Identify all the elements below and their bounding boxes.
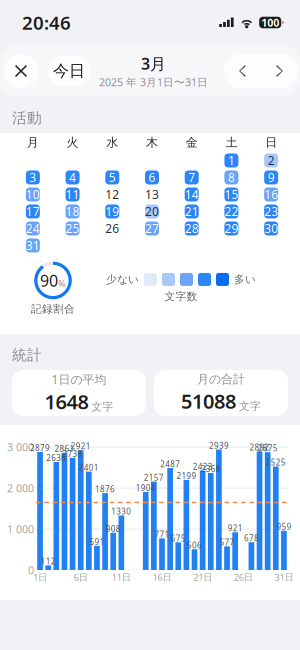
staticText: 1 000 bbox=[7, 522, 34, 536]
staticText: 6 bbox=[148, 169, 155, 185]
staticText: 12 bbox=[105, 186, 119, 202]
staticText: 2939 bbox=[209, 440, 229, 451]
staticText: 30 bbox=[264, 220, 278, 236]
staticText: 2 bbox=[268, 152, 275, 168]
staticText: 2892 bbox=[249, 442, 269, 453]
staticText: 1904 bbox=[136, 483, 156, 493]
staticText: 21 bbox=[185, 203, 199, 219]
staticText: 24 bbox=[26, 220, 40, 236]
staticText: 11日 bbox=[112, 571, 131, 583]
staticText: 26 bbox=[105, 220, 119, 236]
staticText: 8 bbox=[228, 169, 235, 185]
staticText: 1日 bbox=[33, 571, 47, 583]
staticText: 10 bbox=[26, 186, 40, 202]
button[interactable]: 閉じる bbox=[4, 54, 38, 88]
staticText: 26日 bbox=[234, 571, 253, 583]
staticText: 今日 bbox=[53, 61, 85, 81]
staticText: 16日 bbox=[152, 571, 171, 583]
staticText: 文字数 bbox=[164, 290, 197, 303]
staticText: 908 bbox=[106, 523, 121, 534]
staticText: 3 bbox=[29, 169, 36, 185]
staticText: 27 bbox=[145, 220, 159, 236]
staticText: 木 bbox=[146, 135, 158, 150]
staticText: 5 bbox=[109, 169, 116, 185]
staticText: 1 bbox=[228, 152, 235, 168]
staticText: 金 bbox=[186, 135, 198, 150]
staticText: 4 bbox=[69, 169, 76, 185]
staticText: 3月 bbox=[141, 53, 166, 74]
staticText: 7 bbox=[188, 169, 195, 185]
staticText: 20 bbox=[145, 203, 159, 219]
staticText: 2738 bbox=[63, 448, 83, 459]
staticText: 土 bbox=[225, 135, 237, 150]
staticText: 29 bbox=[224, 220, 238, 236]
staticText: 18 bbox=[66, 203, 80, 219]
staticText: 771 bbox=[154, 529, 169, 540]
staticText: 15 bbox=[224, 186, 238, 202]
staticText: 2879 bbox=[30, 443, 50, 453]
staticText: 6日 bbox=[74, 571, 88, 583]
staticText: 水 bbox=[106, 135, 118, 150]
staticText: 17 bbox=[26, 203, 40, 219]
staticText: 28 bbox=[185, 220, 199, 236]
staticText: 1876 bbox=[95, 484, 115, 494]
staticText: 90 bbox=[40, 270, 58, 291]
staticText: 多い bbox=[234, 273, 256, 286]
button[interactable]: 今日 bbox=[47, 56, 91, 86]
staticText: 959 bbox=[276, 521, 291, 532]
staticText: 2487 bbox=[160, 459, 180, 469]
staticText: 2921 bbox=[71, 441, 91, 452]
staticText: 675 bbox=[171, 533, 186, 544]
button[interactable]: 1日の平均 bbox=[12, 370, 146, 416]
staticText: 文字 bbox=[91, 400, 113, 413]
staticText: 591 bbox=[89, 536, 104, 547]
staticText: 2875 bbox=[258, 443, 278, 453]
staticText: 記録割合 bbox=[31, 302, 75, 316]
staticText: 9 bbox=[268, 169, 275, 185]
staticText: 1648 bbox=[44, 388, 88, 415]
staticText: 112 bbox=[41, 556, 56, 567]
staticText: 2636 bbox=[46, 453, 66, 463]
staticText: 13 bbox=[145, 186, 159, 202]
staticText: 16 bbox=[264, 186, 278, 202]
staticText: 678 bbox=[244, 533, 259, 543]
staticText: % bbox=[58, 277, 66, 290]
staticText: 22 bbox=[224, 203, 238, 219]
staticText: 日 bbox=[265, 135, 277, 150]
staticText: 31 bbox=[26, 237, 40, 253]
staticText: 20:46 bbox=[22, 10, 71, 35]
staticText: 19 bbox=[105, 203, 119, 219]
staticText: 2368 bbox=[201, 464, 221, 474]
staticText: 100 bbox=[261, 15, 279, 30]
staticText: 31日 bbox=[274, 571, 293, 583]
button[interactable]: 前の月 bbox=[224, 54, 261, 88]
staticText: 少ない bbox=[106, 273, 139, 286]
staticText: 活動 bbox=[12, 109, 42, 127]
button[interactable]: 月の合計 bbox=[154, 370, 288, 416]
staticText: 2025 年 3月1日〜31日 bbox=[99, 75, 208, 89]
staticText: 51088 bbox=[181, 388, 236, 414]
staticText: 14 bbox=[185, 186, 199, 202]
staticText: 2861 bbox=[54, 443, 74, 454]
staticText: 統計 bbox=[12, 346, 42, 364]
staticText: 23 bbox=[264, 203, 278, 219]
staticText: 月 bbox=[27, 135, 39, 150]
staticText: 2423 bbox=[193, 461, 213, 472]
staticText: 文字 bbox=[239, 400, 261, 413]
staticText: 火 bbox=[67, 135, 79, 150]
staticText: 1日の平均 bbox=[51, 371, 106, 387]
staticText: 2157 bbox=[144, 472, 164, 483]
staticText: 21日 bbox=[193, 571, 212, 583]
staticText: 25 bbox=[66, 220, 80, 236]
staticText: 1330 bbox=[111, 506, 131, 517]
staticText: 921 bbox=[228, 523, 243, 534]
staticText: 11 bbox=[66, 186, 80, 202]
button[interactable]: 次の月 bbox=[261, 54, 298, 88]
staticText: 2199 bbox=[176, 471, 196, 481]
staticText: 3 000 bbox=[7, 440, 34, 454]
staticText: 月の合計 bbox=[197, 372, 245, 387]
staticText: 2401 bbox=[79, 462, 99, 473]
staticText: 506 bbox=[187, 540, 202, 551]
staticText: 0 bbox=[28, 563, 34, 577]
staticText: 2 000 bbox=[7, 481, 34, 495]
